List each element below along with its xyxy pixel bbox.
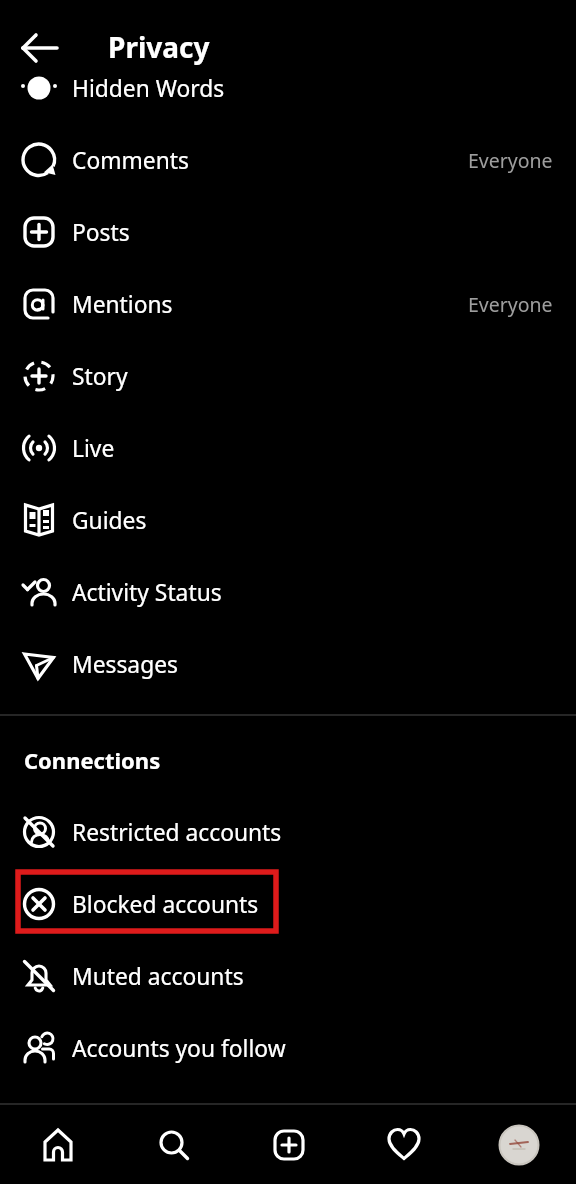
staticText: Messages [72, 649, 178, 680]
staticText: Everyone [468, 147, 553, 174]
staticText: Story [72, 361, 128, 392]
button[interactable]: Mentions [0, 268, 576, 340]
button[interactable] [231, 1105, 346, 1184]
staticText: Restricted accounts [72, 817, 282, 848]
staticText: Everyone [468, 291, 553, 318]
button[interactable]: Muted accounts [0, 940, 576, 1012]
staticText: Blocked accounts [72, 889, 259, 920]
button[interactable]: Restricted accounts [0, 796, 576, 868]
staticText: Accounts you follow [72, 1033, 286, 1064]
button[interactable]: Live [0, 412, 576, 484]
staticText: Hidden Words [72, 73, 225, 104]
button[interactable] [116, 1105, 231, 1184]
button[interactable]: Blocked accounts [0, 868, 576, 940]
staticText: Live [72, 433, 115, 464]
button[interactable]: Activity Status [0, 556, 576, 628]
button[interactable] [346, 1105, 461, 1184]
button[interactable]: Story [0, 340, 576, 412]
button[interactable] [0, 0, 72, 70]
staticText: Guides [72, 505, 147, 536]
button[interactable]: Hidden Words [0, 52, 576, 124]
button[interactable] [461, 1105, 576, 1184]
button[interactable]: Messages [0, 628, 576, 700]
staticText: Connections [24, 745, 161, 775]
button[interactable]: Guides [0, 484, 576, 556]
staticText: Posts [72, 217, 130, 248]
staticText: Mentions [72, 289, 173, 320]
button[interactable]: Comments [0, 124, 576, 196]
button[interactable]: Accounts you follow [0, 1012, 576, 1084]
staticText: Comments [72, 145, 189, 176]
staticText: Privacy [108, 28, 210, 66]
button[interactable] [0, 1105, 116, 1184]
button[interactable]: Posts [0, 196, 576, 268]
staticText: Muted accounts [72, 961, 244, 992]
staticText: Activity Status [72, 577, 222, 608]
